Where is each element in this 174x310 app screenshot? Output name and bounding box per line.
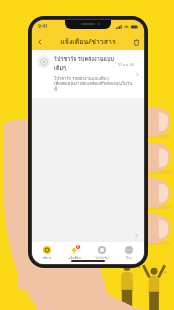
staticText: แจ้งเตือน/ข่าวสาร: [60, 36, 116, 47]
button[interactable]: โปรโมชั่น: [89, 245, 115, 261]
button[interactable]: 1: [61, 245, 87, 261]
staticText: โปรชาร์จ รับพลังงานแบบเต็มๆ: [54, 55, 116, 73]
staticText: อื่นๆ: [126, 255, 132, 260]
button[interactable]: บริการ: [34, 245, 60, 261]
button[interactable]: Delete: [128, 34, 144, 50]
button[interactable]: อื่นๆ: [116, 245, 142, 261]
staticText: บริการ: [42, 255, 52, 260]
staticText: โปรชาร์จ รับพลังงานแบบเต็มๆ เพื่อเติมพลั…: [54, 75, 134, 93]
staticText: 1: [77, 245, 79, 249]
staticText: โปรโมชั่น: [95, 255, 109, 260]
staticText: 9:41: [38, 23, 48, 30]
button[interactable]: Back: [32, 34, 48, 50]
staticText: 31 ม.ค. 65: [118, 62, 134, 67]
staticText: แจ้งเตือน: [68, 255, 81, 260]
button[interactable]: โปรชาร์จ รับพลังงานแบบเต็มๆ: [32, 50, 144, 98]
